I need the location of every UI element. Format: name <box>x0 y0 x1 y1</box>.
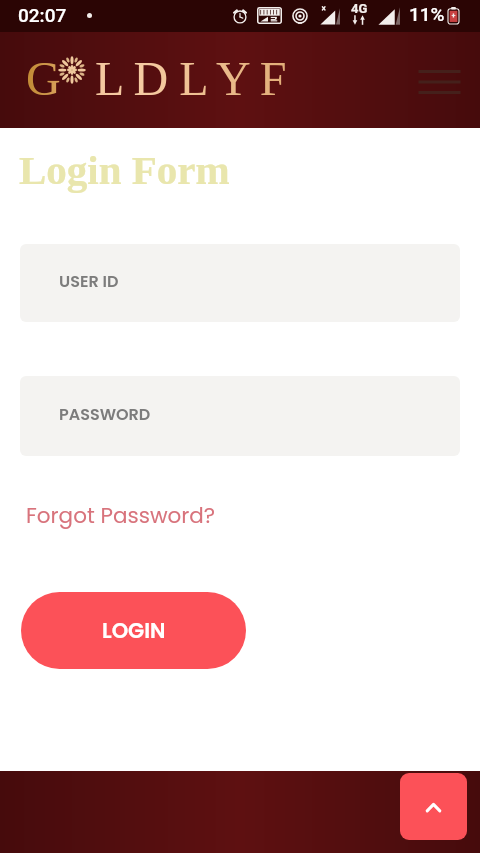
staticText: 4G <box>351 1 368 16</box>
button[interactable]: Menu <box>412 61 467 101</box>
staticText: USER ID <box>59 270 119 292</box>
button[interactable]: LOGIN <box>21 592 246 669</box>
button[interactable]: Scroll to top <box>400 773 467 840</box>
staticText: 02:07 <box>18 4 67 26</box>
button[interactable]: Forgot Password? <box>26 500 216 530</box>
staticText: 11% <box>409 3 445 25</box>
staticText: Forgot Password? <box>26 500 216 530</box>
button[interactable]: PASSWORD <box>20 376 460 456</box>
staticText: LOGIN <box>102 616 166 645</box>
button[interactable]: USER ID <box>20 244 460 322</box>
staticText: PASSWORD <box>59 403 151 425</box>
staticText: Login Form <box>19 147 230 192</box>
staticText: G <box>26 52 61 105</box>
staticText: L D L Y F <box>95 52 287 105</box>
